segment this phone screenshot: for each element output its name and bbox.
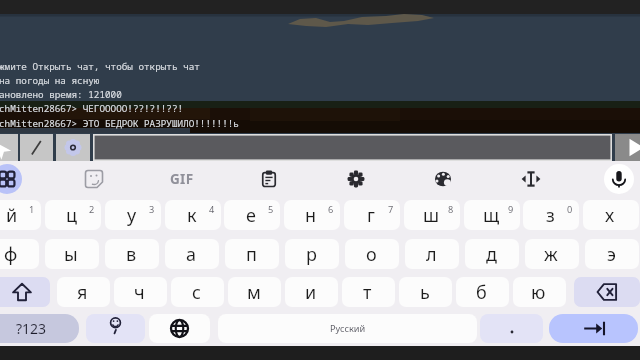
button[interactable]: ю bbox=[513, 277, 566, 307]
staticText: chMitten28667> ЭТО БЕДРОК РАЗРУШИЛО!!!!!… bbox=[0, 117, 239, 130]
staticText: ц bbox=[66, 203, 78, 228]
button[interactable]: Emoticons bbox=[56, 134, 90, 161]
staticText: з bbox=[546, 203, 555, 228]
staticText: 1 bbox=[29, 203, 35, 216]
button[interactable]: я bbox=[57, 277, 110, 307]
button[interactable]: н bbox=[284, 200, 340, 230]
button[interactable]: о bbox=[345, 239, 399, 269]
staticText: у bbox=[127, 203, 137, 228]
button[interactable]: Text editing bbox=[517, 165, 545, 193]
staticText: 2 bbox=[89, 203, 95, 216]
staticText: 0 bbox=[567, 203, 573, 216]
button[interactable]: ц bbox=[45, 200, 101, 230]
button[interactable]: д bbox=[465, 239, 519, 269]
button[interactable]: GIF bbox=[168, 165, 196, 193]
button[interactable]: щ bbox=[464, 200, 520, 230]
staticText: п bbox=[246, 242, 257, 267]
button[interactable]: м bbox=[228, 277, 281, 307]
button[interactable]: з bbox=[523, 200, 579, 230]
button[interactable]: э bbox=[585, 239, 639, 269]
button[interactable]: Toolbar menu bbox=[0, 164, 22, 194]
staticText: х bbox=[605, 203, 615, 228]
button[interactable]: б bbox=[456, 277, 509, 307]
button[interactable]: Period bbox=[480, 314, 543, 343]
button[interactable]: г bbox=[344, 200, 400, 230]
staticText: Русский bbox=[330, 322, 366, 335]
staticText: к bbox=[187, 203, 197, 228]
staticText: э bbox=[607, 242, 616, 267]
staticText: д bbox=[486, 242, 497, 267]
button[interactable]: Cursor bbox=[0, 134, 18, 161]
button[interactable]: х bbox=[583, 200, 639, 230]
staticText: 3 bbox=[149, 203, 155, 216]
button[interactable]: Русский bbox=[218, 314, 477, 343]
staticText: е bbox=[246, 203, 256, 228]
staticText: на погоды на ясную bbox=[0, 74, 100, 87]
button[interactable]: и bbox=[285, 277, 338, 307]
staticText: а bbox=[186, 242, 197, 267]
button[interactable]: а bbox=[165, 239, 219, 269]
staticText: г bbox=[367, 203, 375, 228]
staticText: н bbox=[305, 203, 317, 228]
button[interactable]: ф bbox=[0, 239, 39, 269]
button[interactable]: Clipboard bbox=[255, 165, 283, 193]
button[interactable]: Change language bbox=[149, 314, 210, 343]
button[interactable]: й bbox=[0, 200, 41, 230]
staticText: щ bbox=[483, 203, 500, 228]
button[interactable]: Settings bbox=[342, 165, 370, 193]
staticText: ч bbox=[134, 280, 145, 305]
staticText: GIF bbox=[170, 170, 194, 188]
staticText: ановлено время: 121000 bbox=[0, 88, 122, 101]
button[interactable]: Stickers bbox=[80, 165, 108, 193]
staticText: 4 bbox=[209, 203, 215, 216]
staticText: 7 bbox=[388, 203, 394, 216]
staticText: я bbox=[77, 280, 88, 305]
button[interactable]: Enter bbox=[549, 314, 638, 343]
staticText: ш bbox=[423, 203, 440, 228]
button[interactable]: е bbox=[224, 200, 280, 230]
staticText: ф bbox=[4, 242, 18, 267]
staticText: 9 bbox=[508, 203, 514, 216]
button[interactable]: с bbox=[171, 277, 224, 307]
button[interactable]: ч bbox=[114, 277, 167, 307]
button[interactable]: у bbox=[105, 200, 161, 230]
staticText: 8 bbox=[448, 203, 454, 216]
staticText: и bbox=[305, 280, 317, 305]
staticText: м bbox=[247, 280, 261, 305]
button[interactable]: Themes bbox=[429, 165, 457, 193]
staticText: т bbox=[363, 280, 372, 305]
button[interactable]: т bbox=[342, 277, 395, 307]
staticText: с bbox=[192, 280, 201, 305]
staticText: ь bbox=[420, 280, 430, 305]
staticText: ?123 bbox=[16, 319, 47, 338]
button[interactable]: к bbox=[165, 200, 221, 230]
button[interactable]: Backspace bbox=[574, 277, 640, 307]
button[interactable]: Send bbox=[615, 134, 640, 161]
staticText: ж bbox=[544, 242, 558, 267]
staticText: б bbox=[476, 280, 487, 305]
button[interactable]: ж bbox=[525, 239, 579, 269]
button[interactable]: р bbox=[285, 239, 339, 269]
staticText: 6 bbox=[328, 203, 334, 216]
button[interactable]: Slash command bbox=[20, 134, 53, 161]
staticText: л bbox=[426, 242, 437, 267]
button[interactable]: Voice input bbox=[604, 164, 634, 194]
staticText: ы bbox=[64, 242, 78, 267]
button[interactable]: ?123 bbox=[0, 314, 79, 343]
staticText: в bbox=[126, 242, 137, 267]
staticText: ю bbox=[531, 280, 546, 305]
button[interactable]: ш bbox=[404, 200, 460, 230]
staticText: жмите Открыть чат, чтобы открыть чат bbox=[0, 60, 200, 73]
button[interactable]: в bbox=[105, 239, 159, 269]
button[interactable]: Shift bbox=[0, 277, 50, 307]
button[interactable]: ы bbox=[45, 239, 99, 269]
button[interactable]: Emoji bbox=[86, 314, 145, 343]
button[interactable] bbox=[93, 134, 612, 161]
staticText: о bbox=[366, 242, 377, 267]
button[interactable]: п bbox=[225, 239, 279, 269]
button[interactable]: ь bbox=[399, 277, 452, 307]
staticText: р bbox=[306, 242, 317, 267]
staticText: й bbox=[6, 203, 18, 228]
staticText: chMitten28667> ЧЕГООООО!??!?!!??! bbox=[0, 102, 184, 115]
button[interactable]: л bbox=[405, 239, 459, 269]
